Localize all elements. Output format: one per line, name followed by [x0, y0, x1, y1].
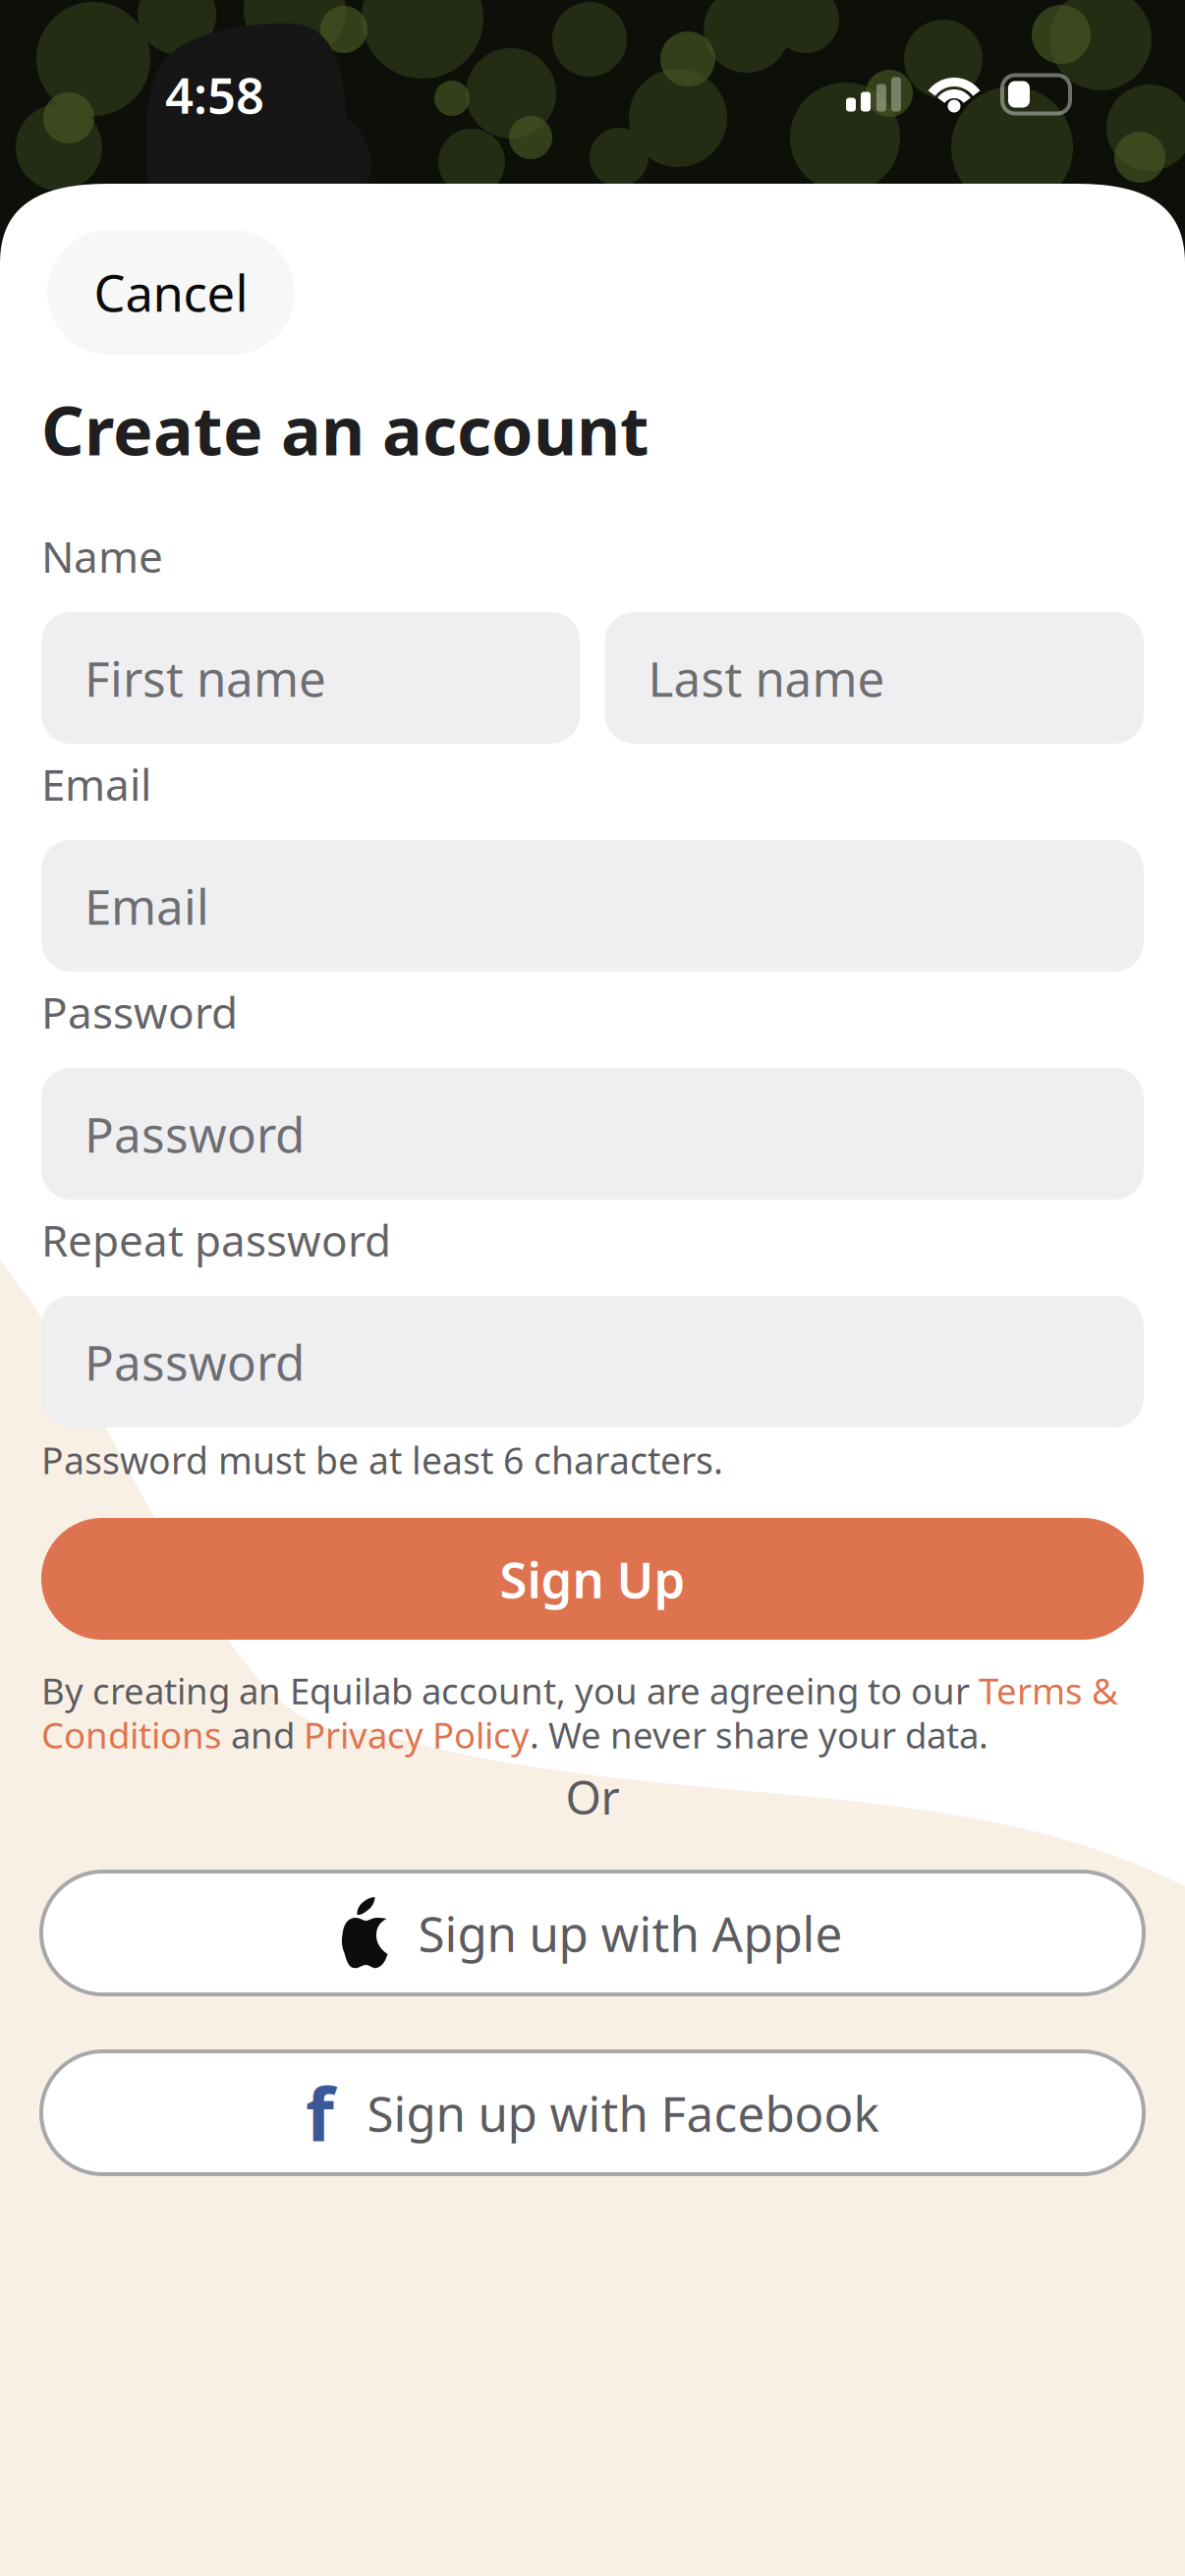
staticText: Create an account	[41, 385, 649, 474]
staticText: Repeat password	[41, 1211, 391, 1269]
staticText: Last name	[648, 646, 885, 710]
staticText: Sign up with Apple	[418, 1901, 843, 1965]
staticText: and	[222, 1710, 304, 1759]
button[interactable]: Cancel	[47, 230, 295, 355]
staticText: First name	[85, 646, 326, 710]
staticText: Email	[85, 874, 209, 938]
staticText: Cancel	[94, 259, 248, 325]
staticText: Email	[41, 755, 151, 813]
staticText: Password	[85, 1102, 305, 1166]
button[interactable]: Sign Up	[41, 1518, 1144, 1640]
staticText: Name	[41, 527, 163, 585]
staticText: Password	[41, 983, 238, 1041]
staticText: Sign Up	[500, 1546, 685, 1612]
staticText: By creating an Equilab account, you are …	[41, 1666, 979, 1715]
staticText: 4:58	[165, 61, 264, 127]
staticText: Privacy Policy	[304, 1710, 530, 1759]
staticText: Conditions	[41, 1710, 222, 1759]
staticText: f	[306, 2064, 334, 2162]
staticText: Sign up with Facebook	[367, 2081, 879, 2145]
button[interactable]: f	[41, 2051, 1144, 2174]
button[interactable]: Sign up with Apple	[41, 1872, 1144, 1994]
staticText: Terms &	[979, 1666, 1118, 1715]
staticText: Or	[565, 1766, 620, 1827]
staticText: . We never share your data.	[530, 1710, 988, 1759]
staticText: Password	[85, 1329, 305, 1394]
staticText: Password must be at least 6 characters.	[41, 1436, 723, 1484]
